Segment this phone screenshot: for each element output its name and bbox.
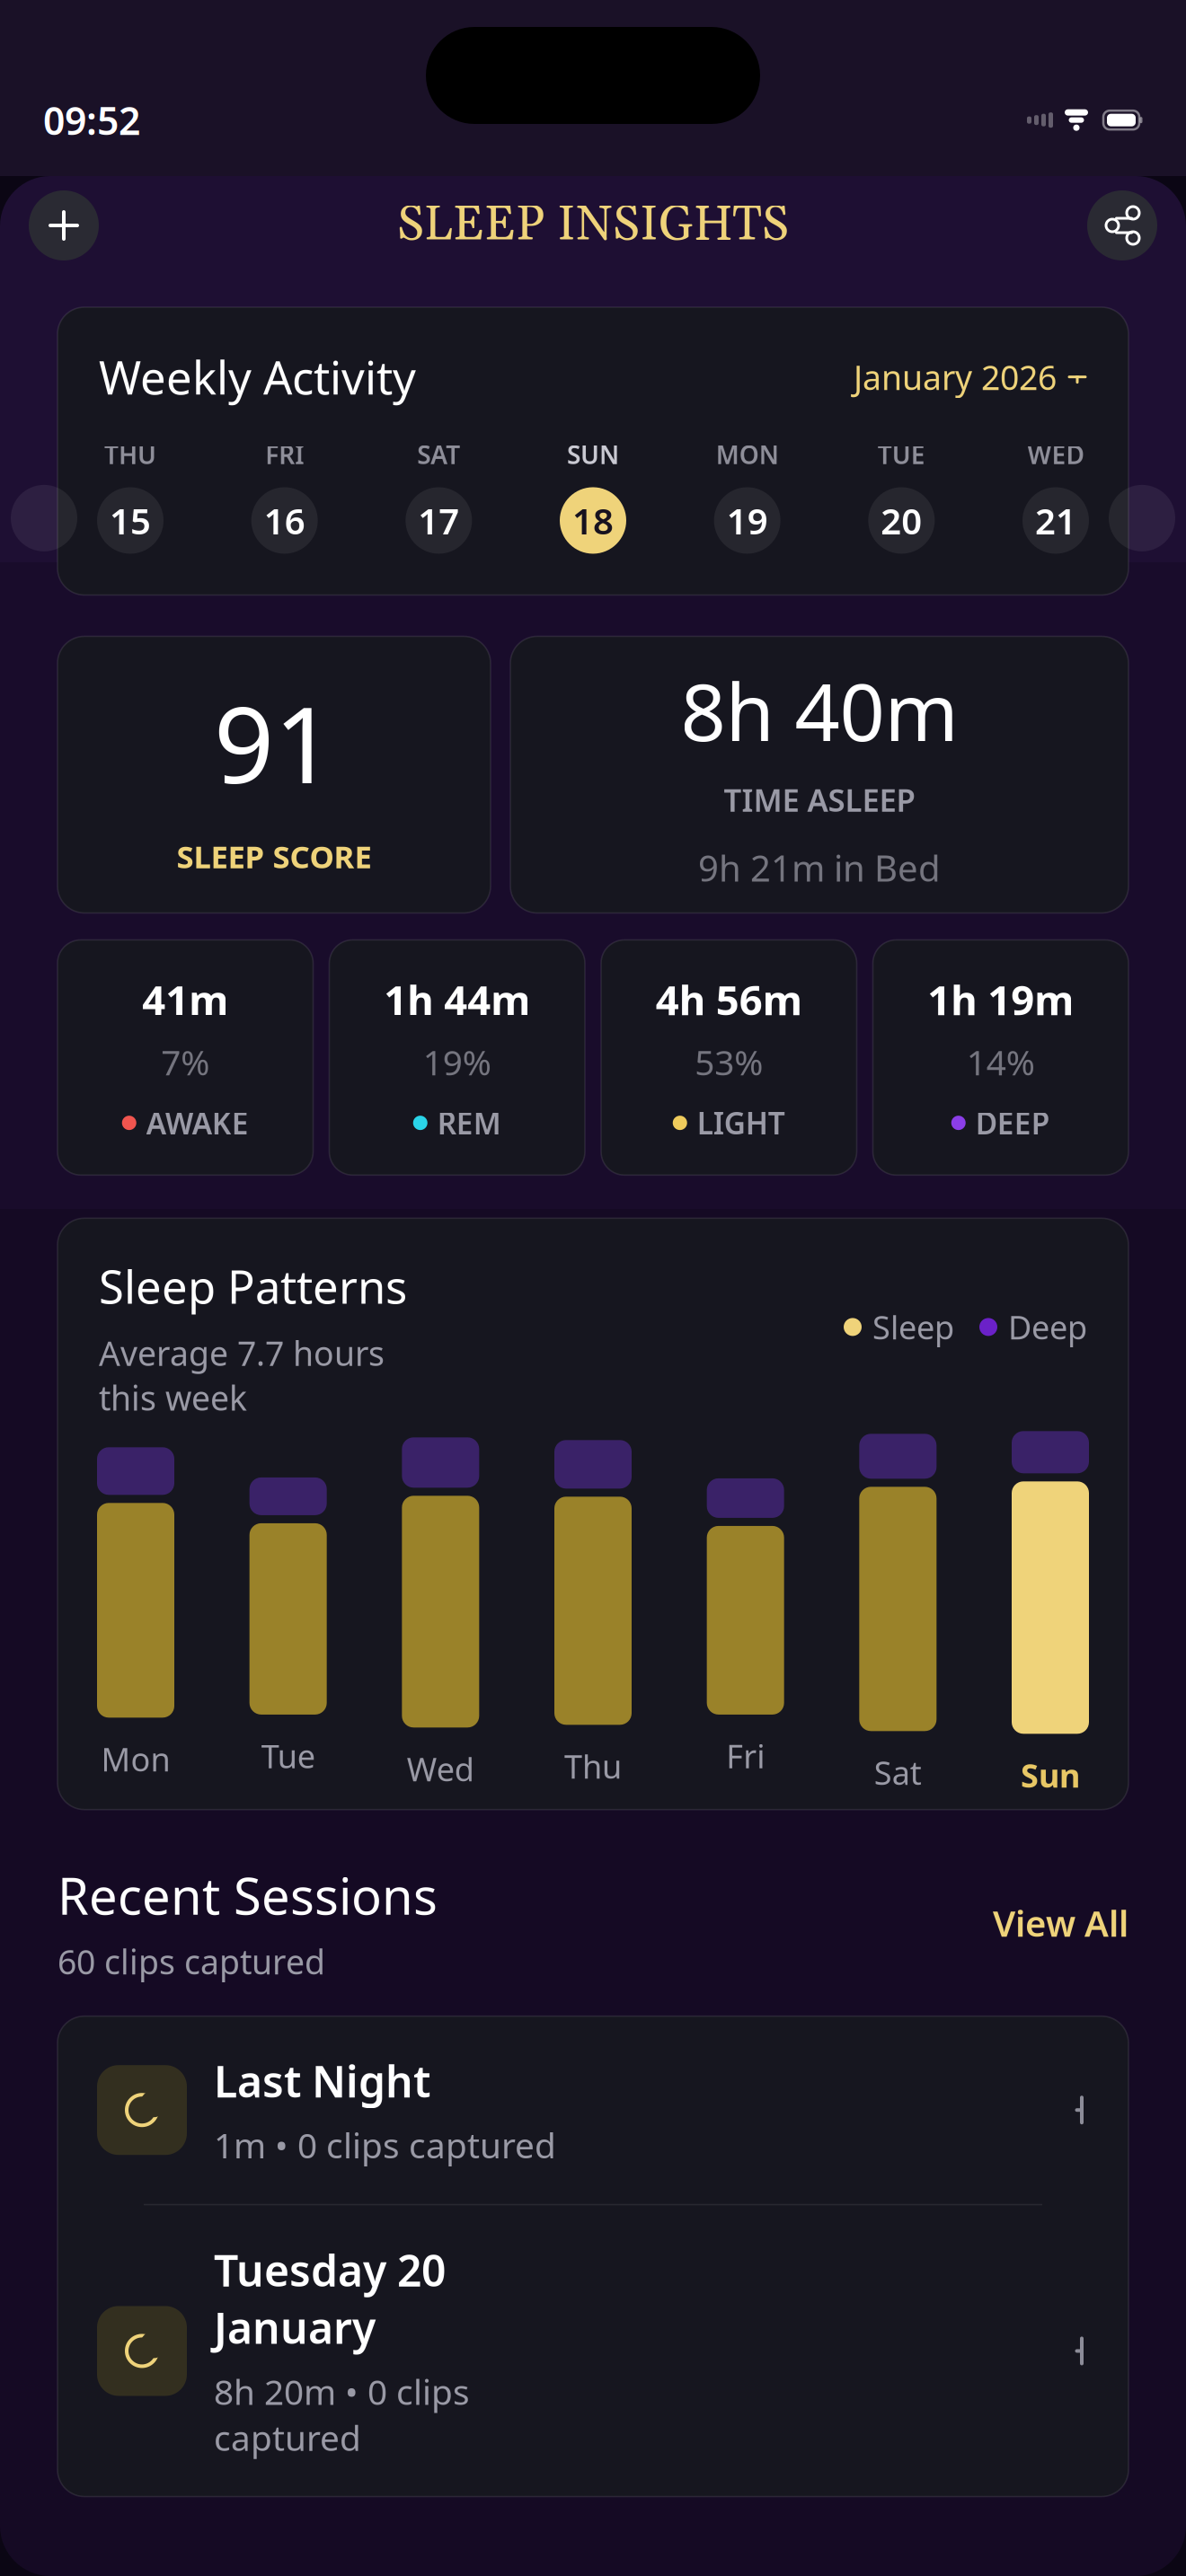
staticText: 1m • 0 clips captured bbox=[214, 2122, 556, 2168]
staticText: 7% bbox=[161, 1039, 210, 1085]
staticText: REM bbox=[437, 1103, 501, 1143]
staticText: SAT bbox=[417, 438, 460, 471]
staticText: 16 bbox=[264, 497, 305, 544]
staticText: 60 clips captured bbox=[58, 1939, 325, 1984]
staticText: 9h 21m in Bed bbox=[698, 844, 941, 891]
staticText: 53% bbox=[695, 1039, 763, 1085]
button[interactable]: THU bbox=[97, 438, 164, 554]
staticText: 1h 44m bbox=[384, 972, 530, 1026]
staticText: SLEEP SCORE bbox=[177, 836, 372, 877]
staticText: 8h 40m bbox=[681, 658, 958, 763]
staticText: FRI bbox=[265, 438, 304, 471]
staticText: 09:52 bbox=[43, 95, 140, 146]
staticText: 18 bbox=[572, 497, 614, 544]
staticText: 4h 56m bbox=[656, 972, 802, 1026]
button[interactable]: TUE bbox=[868, 438, 935, 554]
staticText: Sleep Patterns bbox=[99, 1256, 407, 1316]
button[interactable]: Share bbox=[1087, 190, 1157, 260]
staticText: DEEP bbox=[976, 1103, 1050, 1143]
button[interactable]: MON bbox=[714, 438, 781, 554]
button[interactable]: View All bbox=[993, 1899, 1128, 1947]
staticText: 17 bbox=[418, 497, 459, 544]
staticText: January 2026 bbox=[854, 355, 1057, 399]
staticText: Sat bbox=[874, 1751, 922, 1794]
staticText: Weekly Activity bbox=[99, 347, 416, 407]
staticText: Average 7.7 hours this week bbox=[99, 1331, 385, 1420]
staticText: View All bbox=[993, 1899, 1128, 1947]
button[interactable]: FRI bbox=[251, 438, 318, 554]
button[interactable]: Last Night bbox=[58, 2016, 1128, 2204]
staticText: Thu bbox=[564, 1745, 622, 1787]
staticText: 21 bbox=[1035, 497, 1076, 544]
staticText: Wed bbox=[407, 1747, 474, 1790]
staticText: TUE bbox=[878, 438, 925, 471]
button[interactable]: SUN bbox=[560, 438, 626, 554]
staticText: 15 bbox=[110, 497, 151, 544]
staticText: SLEEP INSIGHTS bbox=[397, 195, 789, 256]
staticText: Mon bbox=[101, 1737, 170, 1780]
staticText: 8h 20m • 0 clips captured bbox=[214, 2368, 470, 2461]
staticText: Sun bbox=[1021, 1754, 1080, 1796]
button[interactable]: WED bbox=[1022, 438, 1089, 554]
staticText: AWAKE bbox=[146, 1103, 249, 1143]
staticText: 1h 19m bbox=[927, 972, 1074, 1026]
staticText: 20 bbox=[881, 497, 922, 544]
staticText: THU bbox=[104, 438, 156, 471]
staticText: 91 bbox=[214, 672, 334, 812]
button[interactable]: SAT bbox=[405, 438, 472, 554]
button[interactable]: Close bbox=[29, 190, 99, 260]
staticText: Tuesday 20 January bbox=[214, 2241, 446, 2356]
staticText: Deep bbox=[1008, 1306, 1087, 1348]
staticText: Tue bbox=[261, 1734, 315, 1777]
staticText: 19 bbox=[727, 497, 768, 544]
staticText: SUN bbox=[567, 438, 619, 471]
staticText: MON bbox=[716, 438, 779, 471]
staticText: 41m bbox=[142, 972, 228, 1026]
button[interactable]: Tuesday 20 January bbox=[58, 2205, 1128, 2497]
staticText: Sleep bbox=[872, 1306, 954, 1348]
staticText: Recent Sessions bbox=[58, 1862, 438, 1928]
staticText: LIGHT bbox=[697, 1103, 785, 1143]
staticText: Last Night bbox=[214, 2052, 430, 2109]
staticText: 14% bbox=[967, 1039, 1035, 1085]
button[interactable]: January 2026 bbox=[854, 355, 1087, 399]
staticText: TIME ASLEEP bbox=[724, 779, 915, 820]
staticText: WED bbox=[1027, 438, 1084, 471]
staticText: Fri bbox=[726, 1734, 765, 1777]
staticText: 19% bbox=[423, 1039, 491, 1085]
